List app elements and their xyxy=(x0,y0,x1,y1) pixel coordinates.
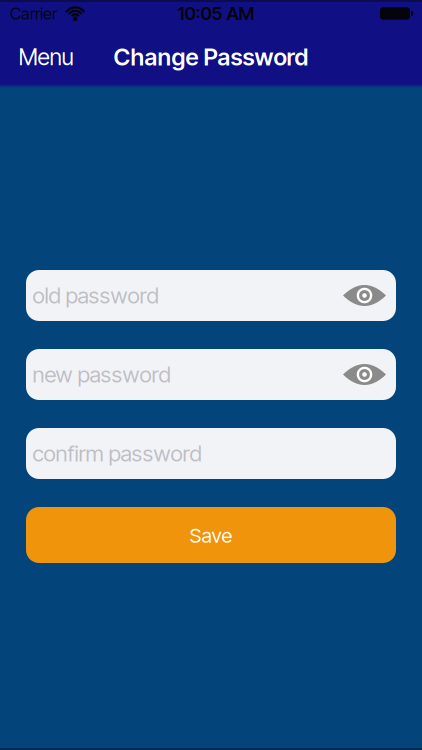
staticText: Carrier xyxy=(10,3,57,23)
staticText: Menu xyxy=(18,43,73,71)
staticText: confirm password xyxy=(32,440,201,467)
staticText: Save xyxy=(189,523,232,548)
staticText: 10:05 AM xyxy=(177,2,254,24)
staticText: Change Password xyxy=(113,43,308,71)
staticText: old password xyxy=(32,282,158,309)
button[interactable]: Show password xyxy=(343,364,396,385)
staticText: new password xyxy=(32,361,170,388)
button[interactable]: Menu xyxy=(18,43,73,71)
button[interactable]: Save xyxy=(26,507,396,563)
button[interactable]: Show password xyxy=(343,285,396,306)
